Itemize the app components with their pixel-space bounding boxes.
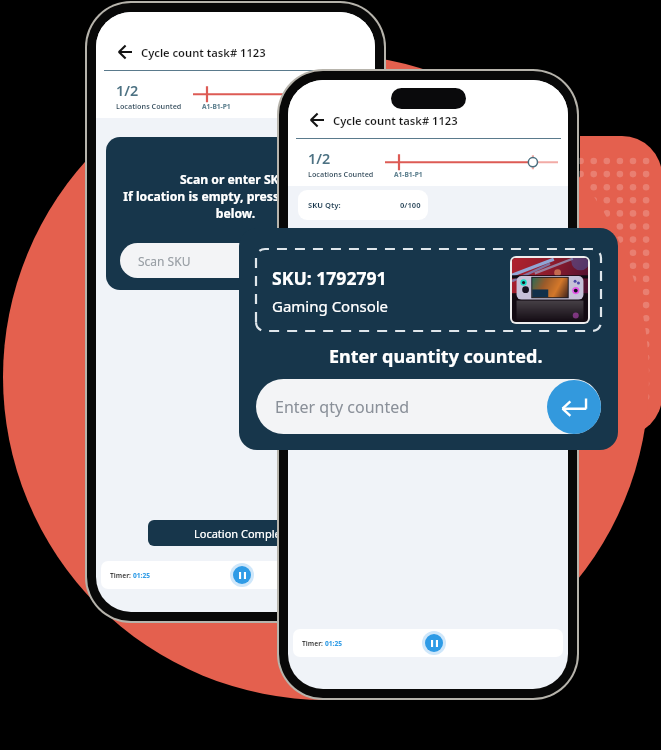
staticText: Scan or enter SKU. If location is empty,… (106, 171, 365, 222)
button[interactable]: Submit quantity (547, 380, 601, 434)
staticText: Timer: (302, 639, 325, 648)
button[interactable]: Pause timer (233, 566, 251, 584)
staticText: Gaming Console (272, 296, 389, 316)
staticText: 0/100 (400, 200, 421, 210)
button[interactable]: Scan SKU (120, 243, 351, 278)
staticText: 1/2 (116, 81, 139, 101)
button[interactable]: Back (117, 44, 133, 60)
staticText: Enter qty counted (275, 396, 410, 418)
button[interactable]: Back (309, 112, 325, 128)
staticText: SKU: 1792791 (272, 266, 387, 290)
staticText: Cycle count task# 1123 (333, 113, 458, 128)
staticText: SKU Qty: (308, 200, 341, 210)
staticText: Scan SKU (138, 253, 191, 269)
button[interactable]: Location Complete (148, 520, 337, 546)
staticText: 01:25 (133, 571, 150, 580)
staticText: Timer: (110, 571, 133, 580)
button[interactable]: SKU Qty: (308, 190, 421, 220)
button[interactable]: Pause timer (425, 634, 443, 652)
staticText: A1-B1-P1 (202, 102, 231, 111)
staticText: Enter quantity counted. (329, 344, 543, 369)
staticText: 1/2 (308, 149, 331, 169)
staticText: Cycle count task# 1123 (141, 45, 266, 60)
staticText: A1-B1-P1 (394, 170, 423, 179)
staticText: Locations Counted (116, 101, 182, 111)
button[interactable]: Enter qty counted (256, 379, 601, 434)
staticText: Locations Counted (308, 169, 374, 179)
staticText: 01:25 (325, 639, 342, 648)
staticText: Location Complete (194, 526, 291, 541)
